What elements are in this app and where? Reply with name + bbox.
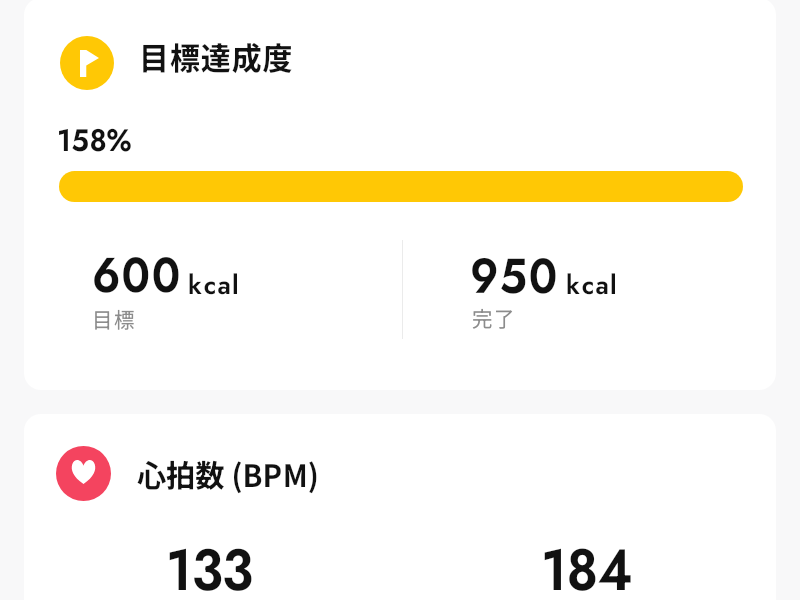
other: Goal — [60, 36, 114, 90]
other: Heart rate — [56, 446, 111, 501]
button[interactable]: Heart rate — [24, 414, 776, 600]
button[interactable]: Goal — [24, 0, 776, 390]
